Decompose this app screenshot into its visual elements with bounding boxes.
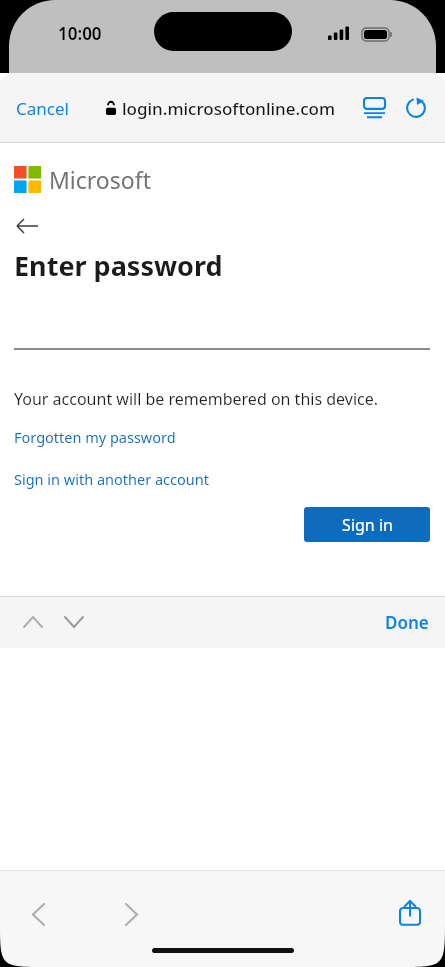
button[interactable]: Back (16, 892, 60, 936)
button[interactable]: Reader view (357, 91, 391, 125)
button[interactable]: Next field (55, 603, 93, 641)
staticText: Microsoft (49, 164, 151, 195)
button[interactable]: Sign in (304, 507, 430, 542)
staticText: Enter password (14, 247, 223, 284)
staticText: Sign in (342, 514, 393, 536)
staticText: Cancel (16, 97, 69, 120)
staticText: 10:00 (58, 22, 102, 45)
staticText: Your account will be remembered on this … (14, 388, 379, 410)
button[interactable]: Back (10, 209, 44, 243)
staticText: Forgotten my password (14, 427, 176, 447)
button[interactable]: Done (379, 605, 435, 640)
button[interactable]: Forward (109, 892, 153, 936)
staticText: login.microsoftonline.com (122, 97, 335, 120)
staticText: Sign in with another account (14, 469, 209, 489)
button[interactable]: Reload (399, 91, 433, 125)
button[interactable]: Sign in with another account (14, 467, 209, 491)
button[interactable]: Previous field (14, 603, 52, 641)
button[interactable]: Cancel (14, 91, 71, 126)
button[interactable]: Forgotten my password (14, 425, 176, 449)
button[interactable]: Share (388, 890, 432, 934)
staticText: Done (385, 611, 429, 634)
